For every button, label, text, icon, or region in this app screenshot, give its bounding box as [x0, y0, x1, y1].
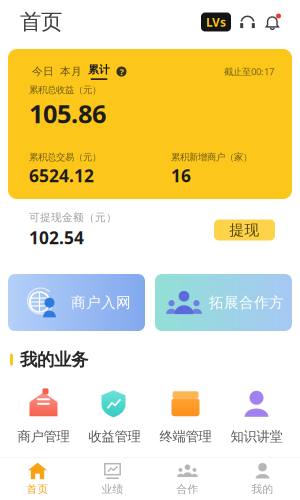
staticText: 累计 [88, 63, 110, 76]
button[interactable]: 消息通知 [264, 13, 281, 30]
staticText: 拓展合作方 [209, 293, 284, 311]
staticText: 6524.12 [29, 164, 94, 187]
button[interactable]: 在线客服 [239, 13, 256, 30]
button[interactable]: 商户管理 [8, 388, 79, 445]
staticText: 终端管理 [159, 428, 211, 445]
staticText: 截止至00:17 [224, 65, 274, 78]
button[interactable]: 本月 [60, 62, 82, 81]
staticText: 首页 [20, 9, 62, 35]
button[interactable]: 收益管理 [79, 388, 150, 445]
button[interactable]: 收益说明 [116, 66, 127, 77]
button[interactable]: 合作 [150, 462, 225, 496]
button[interactable]: 知识讲堂 [221, 388, 292, 445]
staticText: 累积新增商户（家） [171, 151, 252, 163]
button[interactable]: 首页 [0, 462, 75, 496]
button[interactable]: 终端管理 [150, 388, 221, 445]
staticText: LVs [206, 14, 226, 30]
staticText: 提现 [229, 221, 259, 239]
staticText: 合作 [176, 483, 198, 496]
staticText: 本月 [60, 65, 82, 78]
button[interactable]: 商户入网 [8, 274, 145, 331]
staticText: 累积总交易（元） [29, 151, 101, 163]
button[interactable]: 累计 [88, 63, 110, 80]
staticText: 收益管理 [88, 428, 140, 445]
button[interactable]: 会员等级 [201, 12, 231, 31]
staticText: 102.54 [29, 226, 84, 249]
staticText: 累积总收益（元） [29, 84, 101, 96]
button[interactable]: 业绩 [75, 462, 150, 496]
button[interactable]: 我的 [225, 462, 300, 496]
staticText: 可提现金额（元） [29, 211, 117, 224]
button[interactable]: 拓展合作方 [155, 274, 292, 331]
staticText: 105.86 [29, 97, 106, 130]
staticText: 16 [171, 164, 191, 187]
staticText: 我的业务 [20, 349, 88, 370]
staticText: 业绩 [101, 483, 123, 496]
staticText: ? [119, 65, 123, 78]
button[interactable]: 提现 [214, 219, 275, 240]
staticText: 商户入网 [71, 293, 131, 311]
button[interactable]: 今日 [32, 62, 54, 81]
staticText: 今日 [32, 65, 54, 78]
staticText: 知识讲堂 [230, 428, 282, 445]
staticText: 商户管理 [17, 428, 69, 445]
staticText: 首页 [26, 483, 48, 496]
staticText: 我的 [251, 483, 273, 496]
